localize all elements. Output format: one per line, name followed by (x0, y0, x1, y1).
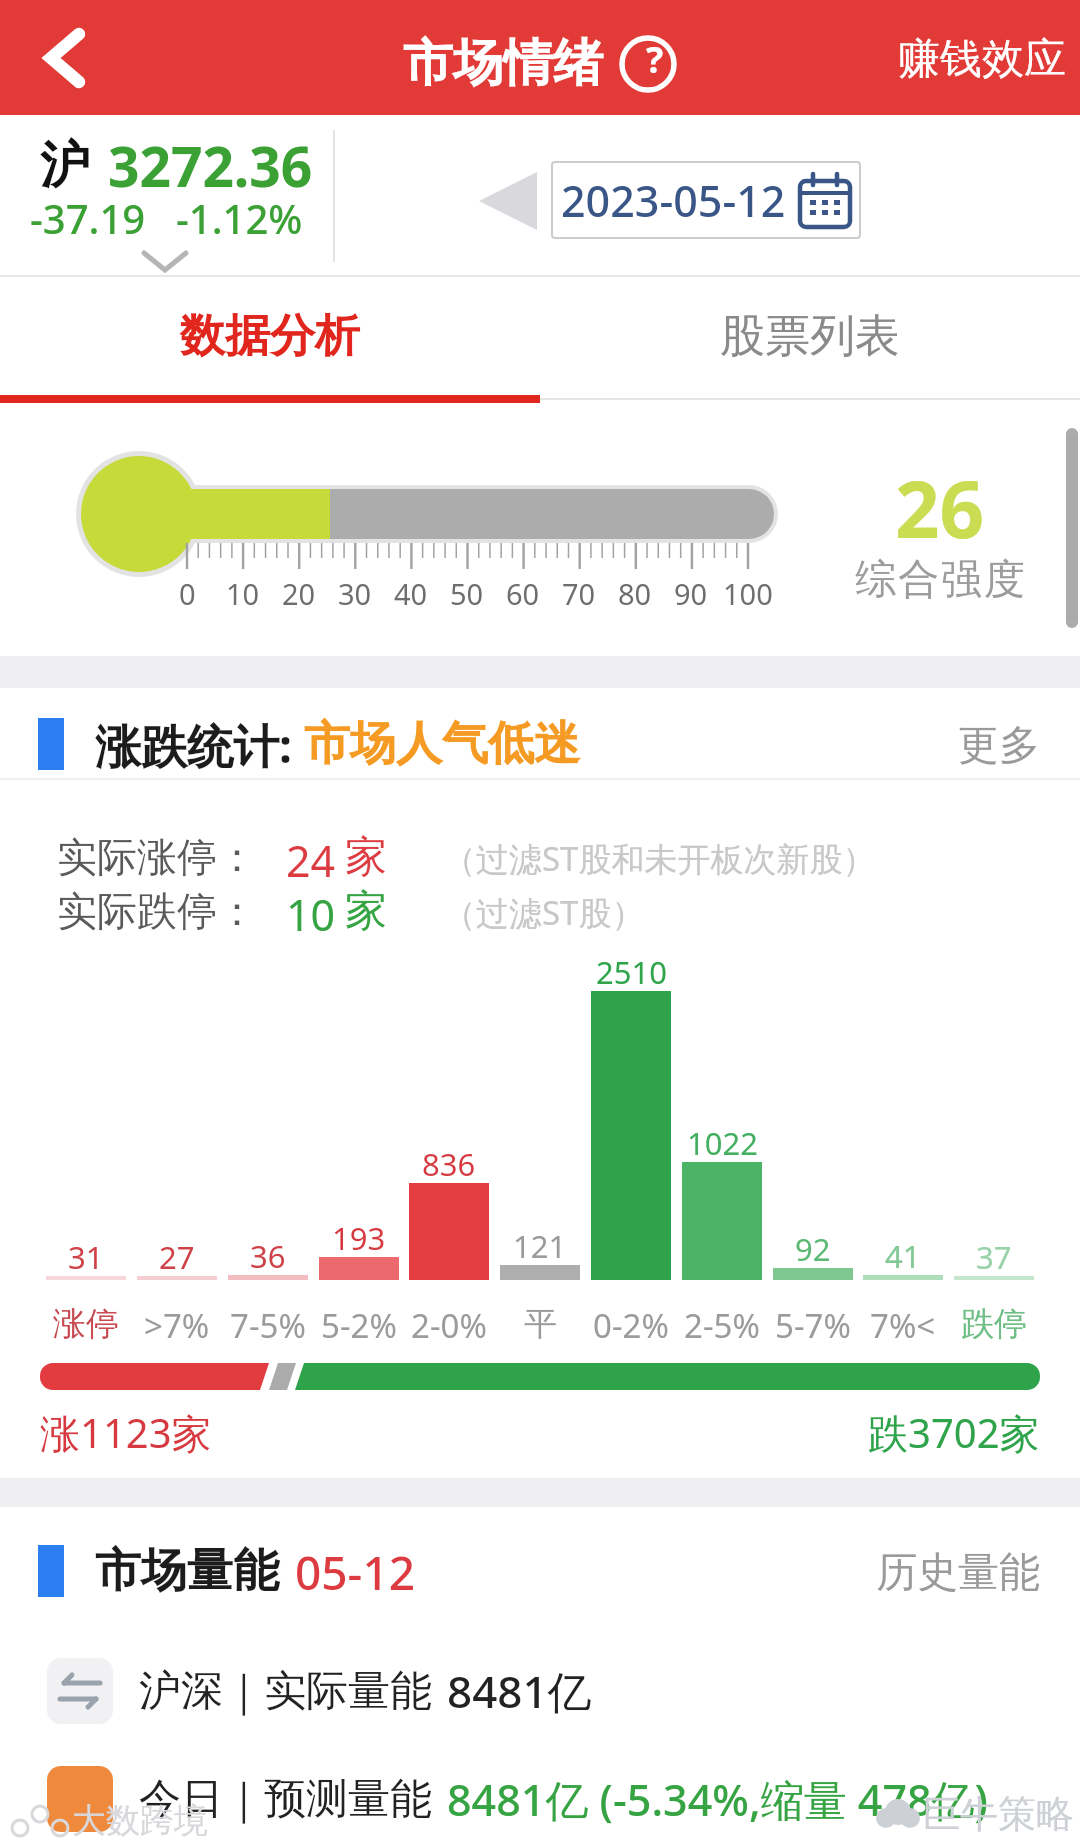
staticText: 50 (450, 574, 484, 610)
staticText: 平 (524, 1303, 557, 1343)
button[interactable]: 赚钱效应 (880, 33, 1066, 83)
staticText: 40 (394, 574, 428, 610)
staticText: 80 (618, 574, 652, 610)
staticText: 10 (286, 885, 336, 937)
staticText: -1.12% (176, 191, 303, 245)
staticText: 1022 (687, 1122, 758, 1160)
staticText: 7-5% (230, 1303, 306, 1343)
staticText: 26 (895, 455, 985, 555)
staticText: 70 (562, 574, 596, 610)
staticText: 沪 (40, 134, 90, 197)
staticText: 市场量能 (95, 1542, 279, 1600)
staticText: 家 (345, 885, 387, 937)
staticText: 20 (282, 574, 316, 610)
button[interactable]: 市场情绪 (403, 32, 677, 95)
staticText: 05-12 (295, 1541, 416, 1601)
staticText: 0 (179, 574, 196, 610)
staticText: 股票列表 (720, 308, 900, 365)
staticText: 121 (513, 1225, 567, 1263)
staticText: 836 (422, 1143, 476, 1181)
staticText: 92 (795, 1228, 831, 1266)
staticText: 涨1123家 (40, 1405, 212, 1455)
staticText: 更多 (958, 720, 1040, 768)
staticText: 跌停 (961, 1303, 1027, 1343)
staticText: 60 (506, 574, 540, 610)
staticText: 36 (250, 1235, 286, 1273)
staticText: 2-5% (684, 1303, 760, 1343)
staticText: 10 (226, 574, 260, 610)
staticText: 100 (723, 574, 773, 610)
staticText: 今日｜预测量能 (139, 1773, 433, 1826)
button[interactable] (47, 1766, 113, 1832)
staticText: 90 (674, 574, 708, 610)
staticText: 跌3702家 (868, 1405, 1040, 1455)
button[interactable]: 更多 (920, 720, 1040, 768)
staticText: 41 (885, 1235, 921, 1273)
staticText: （过滤ST股和未开板次新股） (443, 836, 876, 881)
staticText: 2510 (596, 951, 667, 989)
button[interactable]: 2023-05-12 (551, 161, 861, 239)
staticText: 2-0% (411, 1303, 487, 1343)
staticText: 市场情绪 (403, 32, 603, 95)
button[interactable] (47, 1658, 113, 1724)
button[interactable] (20, 10, 110, 105)
staticText: 涨停 (53, 1303, 119, 1343)
button[interactable]: 股票列表 (540, 277, 1080, 395)
staticText: 3272.36 (108, 128, 313, 203)
staticText: >7% (144, 1303, 210, 1343)
staticText: 0-2% (593, 1303, 669, 1343)
staticText: 31 (68, 1236, 104, 1274)
staticText: 8481亿 (447, 1661, 592, 1721)
staticText: 市场人气低迷 (304, 715, 580, 773)
staticText: 赚钱效应 (898, 33, 1066, 83)
staticText: 193 (332, 1217, 386, 1255)
staticText: 数据分析 (180, 308, 360, 365)
staticText: 涨跌统计: (95, 714, 292, 774)
staticText: 5-2% (321, 1303, 397, 1343)
staticText: 家 (345, 831, 387, 883)
staticText: 2023-05-12 (561, 171, 786, 230)
staticText: 综合强度 (854, 554, 1026, 606)
button[interactable]: 历史量能 (860, 1547, 1040, 1595)
staticText: 实际跌停： (57, 886, 257, 936)
staticText: 27 (159, 1236, 195, 1274)
staticText: 大数跨境 (72, 1799, 208, 1842)
staticText: 30 (338, 574, 372, 610)
staticText: 8481亿 (-5.34%,缩量 478亿) (447, 1770, 989, 1829)
staticText: -37.19 (30, 191, 146, 245)
staticText: 7%< (870, 1303, 936, 1343)
staticText: 24 (286, 831, 336, 883)
staticText: （过滤ST股） (443, 890, 645, 935)
staticText: 实际涨停： (57, 832, 257, 882)
staticText: 历史量能 (876, 1547, 1040, 1595)
staticText: 37 (976, 1236, 1012, 1274)
staticText: 沪深｜实际量能 (139, 1665, 433, 1718)
staticText: 5-7% (775, 1303, 851, 1343)
staticText: ? (646, 35, 664, 84)
staticText: 巨牛策略 (922, 1790, 1074, 1838)
button[interactable]: 数据分析 (0, 277, 540, 395)
